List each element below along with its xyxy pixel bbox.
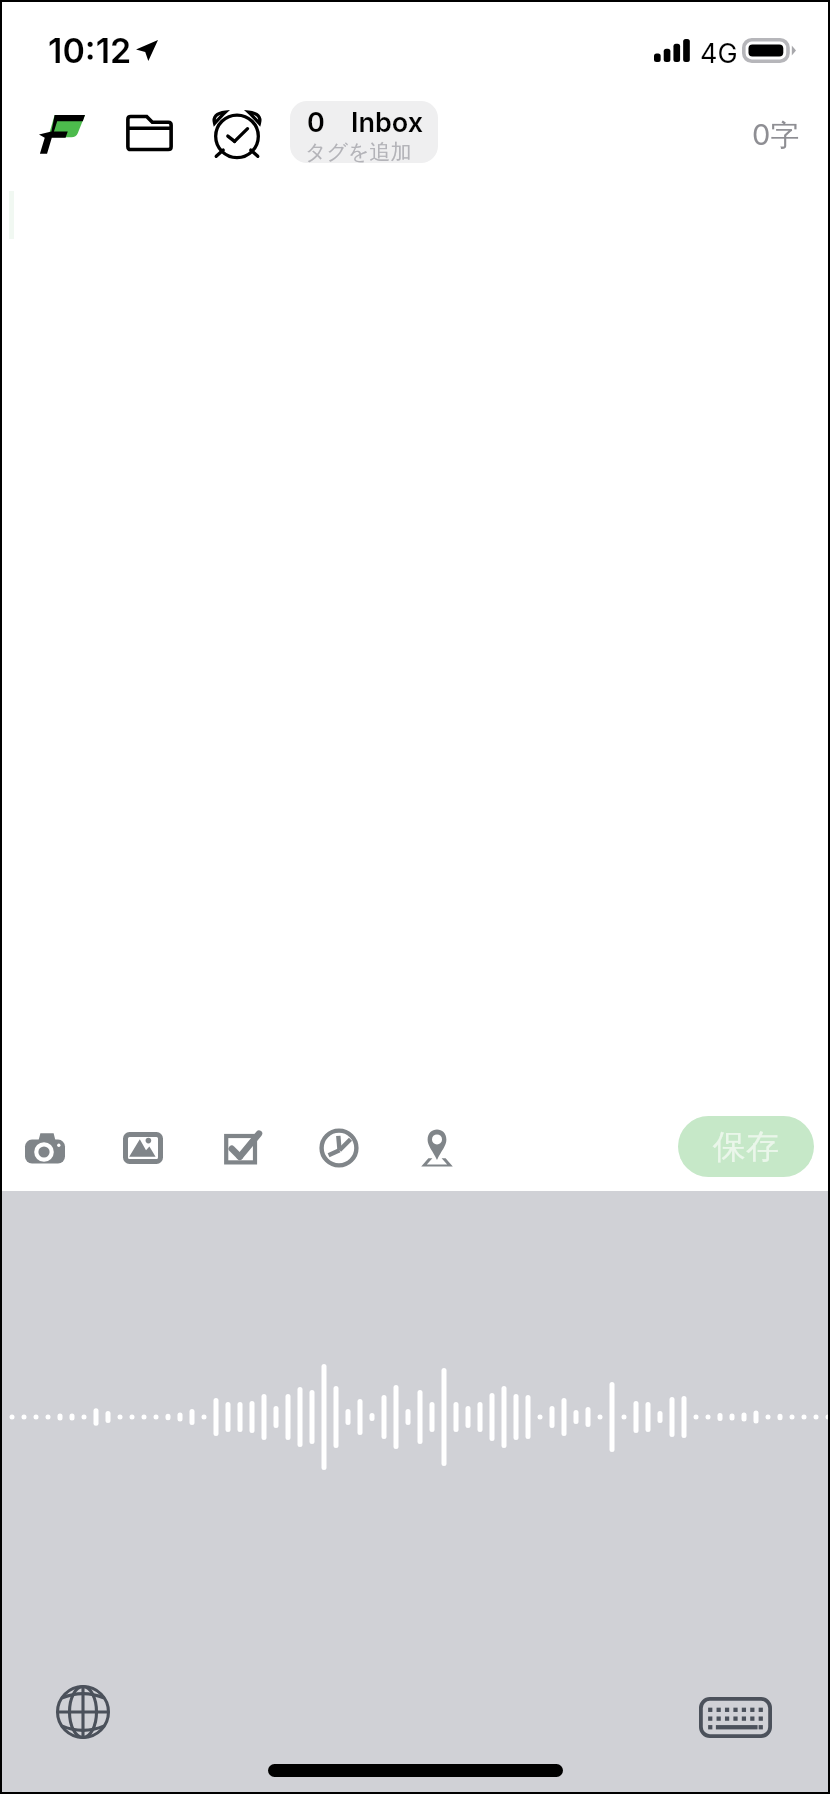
button[interactable]: App home [22,97,102,168]
button[interactable]: Folder [109,97,189,168]
staticText: 0字 [752,117,800,154]
staticText: タグを追加 [305,139,412,163]
staticText: 保存 [713,1126,779,1168]
button[interactable]: Keyboard [693,1691,777,1743]
button[interactable]: Camera [23,1126,67,1170]
button[interactable]: Location [415,1126,459,1170]
staticText: 4G [700,37,738,70]
staticText: 0 [307,106,325,139]
button[interactable]: Timer [317,1126,361,1170]
button[interactable]: Checklist [221,1126,265,1170]
staticText: 10:12 [48,30,132,71]
button[interactable]: 0 [290,101,438,163]
staticText: Inbox [351,106,424,139]
button[interactable]: Reminder [197,97,277,168]
button[interactable]: Switch language [51,1680,115,1744]
button[interactable]: Photos [121,1126,165,1170]
button[interactable]: 保存 [678,1116,814,1177]
